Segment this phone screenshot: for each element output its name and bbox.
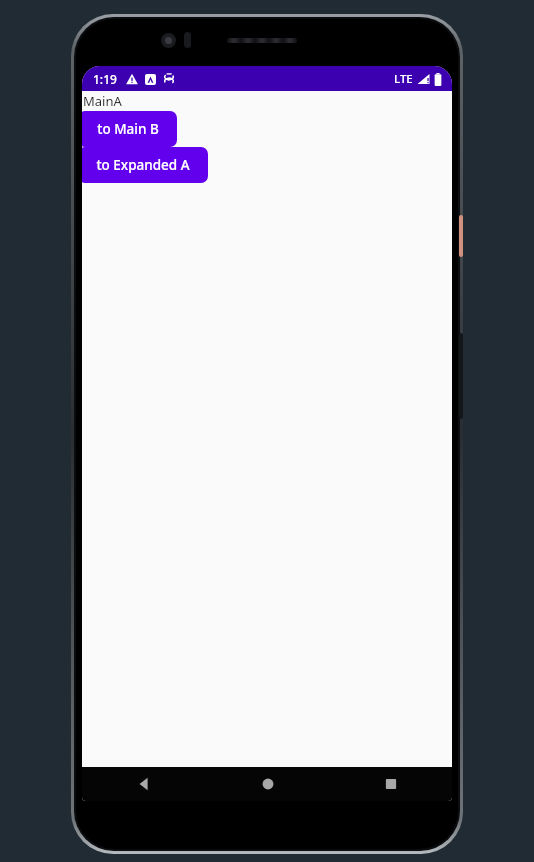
button[interactable]: Home <box>206 767 329 801</box>
button[interactable]: Recent apps <box>329 767 452 801</box>
staticText: to Expanded A <box>96 156 190 174</box>
staticText: to Main B <box>97 120 159 138</box>
staticText: LTE <box>394 71 413 87</box>
staticText: MainA <box>83 92 122 110</box>
button[interactable]: to Main B <box>82 111 177 147</box>
button[interactable]: to Expanded A <box>82 147 208 183</box>
button[interactable]: Back <box>82 767 206 801</box>
staticText: 1:19 <box>93 71 117 87</box>
